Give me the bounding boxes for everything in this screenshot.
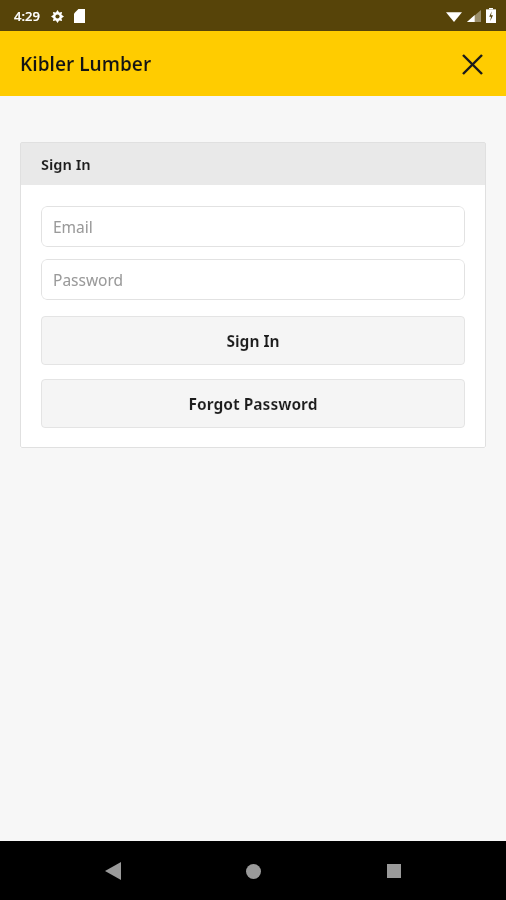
- button[interactable]: Recent apps: [366, 843, 422, 899]
- button[interactable]: Back: [85, 843, 141, 899]
- staticText: Password: [53, 269, 124, 290]
- staticText: Sign In: [226, 330, 280, 351]
- staticText: 4:29: [14, 7, 40, 25]
- button[interactable]: Email: [41, 206, 465, 247]
- staticText: Forgot Password: [188, 393, 318, 414]
- staticText: Kibler Lumber: [20, 51, 152, 77]
- button[interactable]: Forgot Password: [41, 379, 465, 428]
- button[interactable]: Password: [41, 259, 465, 300]
- button[interactable]: Home: [225, 843, 281, 899]
- button[interactable]: Close: [448, 40, 496, 88]
- staticText: Sign In: [41, 154, 91, 174]
- button[interactable]: Sign In: [41, 316, 465, 365]
- staticText: Email: [53, 216, 93, 237]
